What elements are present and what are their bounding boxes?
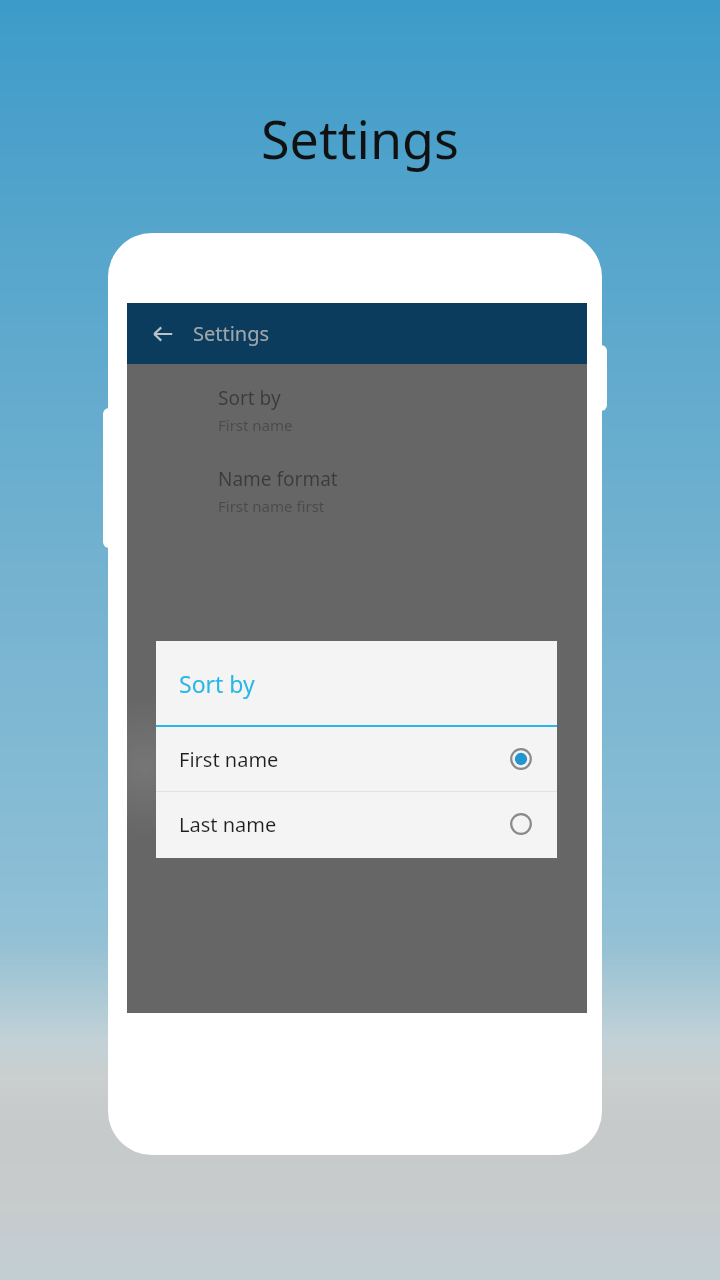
- staticText: Sort by: [179, 668, 255, 699]
- staticText: First name first: [218, 496, 325, 516]
- button[interactable]: Back: [145, 316, 181, 352]
- staticText: First name: [179, 746, 510, 773]
- button[interactable]: First name: [156, 727, 557, 791]
- button[interactable]: Last name: [156, 792, 557, 856]
- staticText: Settings: [193, 320, 270, 347]
- staticText: Last name: [179, 811, 510, 838]
- staticText: First name: [218, 415, 293, 435]
- button[interactable]: Sort by: [218, 383, 587, 437]
- staticText: Settings: [0, 103, 720, 174]
- staticText: Name format: [218, 466, 338, 492]
- staticText: Sort by: [218, 385, 281, 411]
- button[interactable]: Name format: [218, 464, 587, 518]
